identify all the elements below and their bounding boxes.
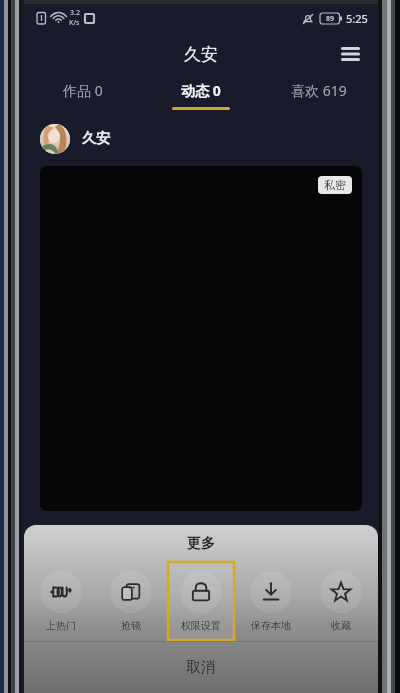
staticText: 收藏: [331, 619, 351, 632]
staticText: 5:25: [346, 11, 368, 26]
button[interactable]: 久安: [40, 124, 362, 154]
staticText: 89: [326, 14, 335, 24]
staticText: 作品 0: [63, 81, 103, 100]
button[interactable]: 私密: [40, 166, 362, 511]
button[interactable]: Menu: [332, 36, 368, 72]
staticText: 动态 0: [181, 81, 221, 100]
button[interactable]: 收藏: [308, 562, 374, 640]
staticText: 权限设置: [181, 619, 221, 632]
staticText: 喜欢 619: [291, 81, 347, 100]
staticText: 保存本地: [251, 619, 291, 632]
staticText: 久安: [82, 130, 110, 148]
button[interactable]: 权限设置: [168, 562, 234, 640]
staticText: 久安: [184, 44, 218, 65]
staticText: 抢镜: [121, 619, 141, 632]
staticText: 私密: [324, 178, 346, 192]
staticText: 上热门: [46, 619, 76, 632]
staticText: 更多: [24, 535, 378, 553]
button[interactable]: 作品 0: [24, 76, 142, 114]
button[interactable]: 取消: [24, 642, 378, 693]
staticText: 取消: [186, 658, 216, 677]
button[interactable]: 喜欢 619: [260, 76, 378, 114]
staticText: 3.2: [70, 8, 80, 18]
staticText: K/s: [69, 18, 80, 28]
button[interactable]: 动态 0: [142, 76, 260, 114]
button[interactable]: 保存本地: [238, 562, 304, 640]
button[interactable]: 抢镜: [98, 562, 164, 640]
button[interactable]: 上热门: [28, 562, 94, 640]
